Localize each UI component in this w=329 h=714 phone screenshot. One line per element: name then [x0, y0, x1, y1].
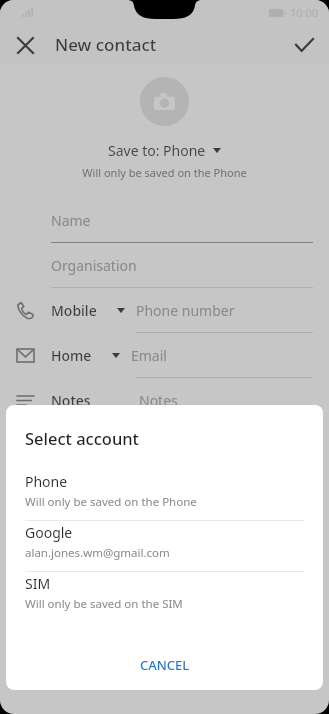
button[interactable]: SIM [6, 572, 323, 622]
button[interactable]: Phone [6, 470, 323, 520]
button[interactable]: Mobile [0, 288, 329, 333]
staticText: Select account [25, 427, 139, 449]
button[interactable]: Close [6, 26, 44, 64]
staticText: 10:00 [290, 5, 319, 20]
button[interactable]: Save to: Phone [102, 139, 227, 162]
staticText: Mobile [51, 301, 97, 320]
staticText: Will only be saved on the SIM [25, 596, 183, 612]
staticText: Notes [51, 391, 91, 410]
staticText: alan.jones.wm@gmail.com [25, 545, 170, 561]
button[interactable]: Notes [0, 378, 329, 423]
staticText: Email [131, 346, 167, 365]
button[interactable]: Organisation [0, 243, 329, 288]
staticText: Notes [139, 391, 178, 410]
button[interactable]: CANCEL [6, 644, 323, 686]
staticText: Google [25, 523, 73, 542]
button[interactable]: Save [285, 26, 323, 64]
button[interactable]: Name [0, 198, 329, 243]
button[interactable]: Add photo [140, 77, 189, 126]
button[interactable]: Home [0, 333, 329, 378]
staticText: SIM [25, 574, 51, 593]
staticText: Organisation [51, 256, 137, 275]
button[interactable]: Google [6, 521, 323, 571]
staticText: Phone [25, 472, 68, 491]
staticText: New contact [55, 33, 157, 56]
staticText: CANCEL [140, 656, 190, 674]
staticText: Name [51, 211, 91, 230]
staticText: Home [51, 346, 92, 365]
staticText: Save to: Phone [108, 141, 206, 160]
staticText: Phone number [136, 301, 235, 320]
staticText: Will only be saved on the Phone [0, 165, 329, 180]
staticText: Will only be saved on the Phone [25, 494, 197, 510]
